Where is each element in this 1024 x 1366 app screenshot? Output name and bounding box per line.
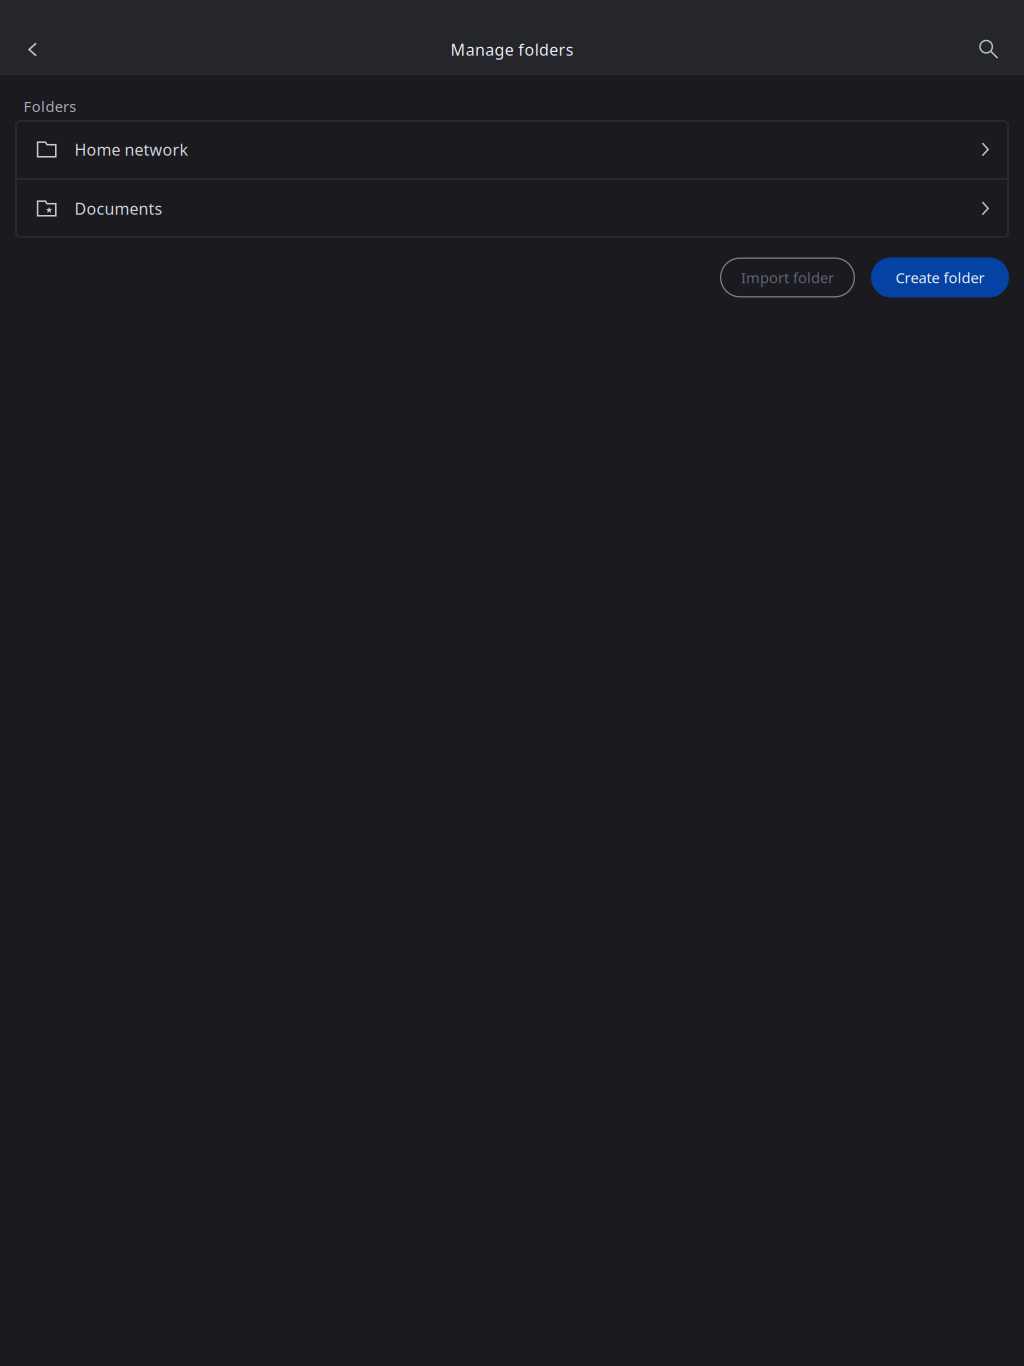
button[interactable]: Documents	[16, 180, 1008, 237]
staticText: Manage folders	[450, 39, 574, 60]
staticText: Create folder	[895, 268, 984, 287]
staticText: Folders	[23, 96, 76, 116]
button[interactable]: Create folder	[871, 257, 1009, 297]
staticText: Documents	[74, 198, 162, 219]
staticText: Home network	[74, 139, 188, 160]
button[interactable]: Home network	[16, 121, 1008, 178]
button[interactable]: Import folder	[720, 257, 855, 297]
button[interactable]: Back	[11, 27, 55, 71]
staticText: Import folder	[741, 268, 834, 287]
button[interactable]: Search	[967, 27, 1011, 71]
